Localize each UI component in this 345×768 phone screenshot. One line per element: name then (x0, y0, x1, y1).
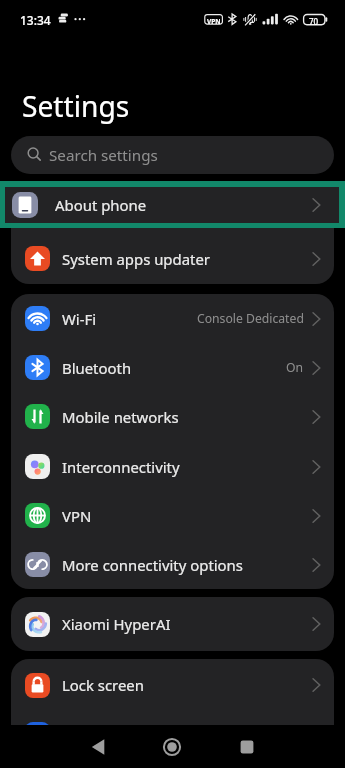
button[interactable]: Bluetooth (11, 343, 334, 392)
button[interactable]: Mobile networks (11, 392, 334, 441)
staticText: VPN (62, 506, 92, 526)
button[interactable]: Xiaomi HyperAI (11, 597, 334, 651)
button[interactable]: Back (82, 731, 114, 763)
staticText: Console Dedicated (197, 310, 304, 327)
staticText: 13:34 (20, 12, 51, 28)
staticText: System apps updater (62, 249, 210, 269)
staticText: On (286, 359, 304, 376)
staticText: Bluetooth (62, 358, 132, 378)
button[interactable]: Home (156, 731, 188, 763)
button[interactable]: Search settings (11, 136, 334, 174)
button[interactable]: Lock screen (11, 659, 334, 711)
staticText: Interconnectivity (62, 457, 180, 477)
staticText: About phone (55, 195, 147, 215)
button[interactable]: System apps updater (11, 233, 334, 284)
button[interactable]: Interconnectivity (11, 442, 334, 491)
staticText: Search settings (49, 145, 158, 166)
staticText: More connectivity options (62, 555, 243, 575)
staticText: 70 (309, 16, 319, 27)
button[interactable]: About phone (11, 187, 334, 223)
staticText: Wi-Fi (62, 309, 97, 329)
button[interactable]: More connectivity options (11, 540, 334, 589)
staticText: Mobile networks (62, 407, 179, 427)
staticText: Xiaomi HyperAI (62, 614, 171, 634)
button[interactable]: VPN (11, 491, 334, 540)
staticText: Settings (22, 87, 130, 125)
button[interactable]: Recents (231, 731, 263, 763)
staticText: VPN (207, 17, 221, 26)
staticText: Lock screen (62, 675, 144, 695)
button[interactable]: Wi-Fi (11, 294, 334, 343)
